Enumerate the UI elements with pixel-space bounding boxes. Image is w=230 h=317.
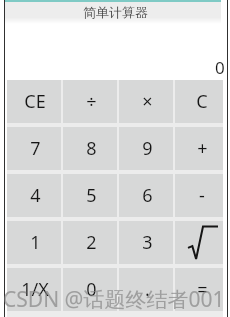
staticText: C (196, 89, 208, 114)
button[interactable]: 1/X (7, 268, 61, 311)
button[interactable]: C (175, 80, 223, 123)
button[interactable]: 0 (63, 268, 117, 311)
button[interactable]: 4 (7, 174, 61, 217)
staticText: 5 (86, 183, 97, 208)
staticText: ÷ (86, 89, 97, 114)
staticText: 1/X (21, 277, 49, 302)
button[interactable]: 6 (119, 174, 173, 217)
button[interactable]: 8 (63, 127, 117, 170)
button[interactable]: . (119, 268, 173, 311)
staticText: 0 (86, 277, 97, 302)
staticText: 简单计算器 (83, 4, 148, 20)
button[interactable]: - (175, 174, 223, 217)
staticText: 7 (30, 136, 41, 161)
button[interactable]: 1 (7, 221, 61, 264)
staticText: 1 (30, 230, 41, 255)
button[interactable]: 3 (119, 221, 173, 264)
staticText: + (197, 136, 208, 161)
button[interactable]: 7 (7, 127, 61, 170)
staticText: CE (24, 89, 46, 114)
staticText: 2 (86, 230, 97, 255)
staticText: 9 (142, 136, 153, 161)
staticText: = (197, 277, 208, 302)
staticText: 8 (86, 136, 97, 161)
button[interactable]: Square root (175, 221, 223, 264)
staticText: 3 (142, 230, 153, 255)
staticText: 4 (30, 183, 41, 208)
button[interactable]: CE (7, 80, 61, 123)
button[interactable]: 2 (63, 221, 117, 264)
staticText: 6 (142, 183, 153, 208)
button[interactable]: × (119, 80, 173, 123)
staticText: - (199, 183, 205, 208)
staticText: . (145, 277, 150, 302)
button[interactable]: 9 (119, 127, 173, 170)
staticText: 0 (215, 56, 225, 79)
staticText: CSDN @话题终结者001 (3, 285, 225, 314)
button[interactable]: = (175, 268, 223, 311)
button[interactable]: + (175, 127, 223, 170)
button[interactable]: 5 (63, 174, 117, 217)
staticText: × (142, 89, 153, 114)
other: Square root (188, 226, 218, 259)
button[interactable]: ÷ (63, 80, 117, 123)
